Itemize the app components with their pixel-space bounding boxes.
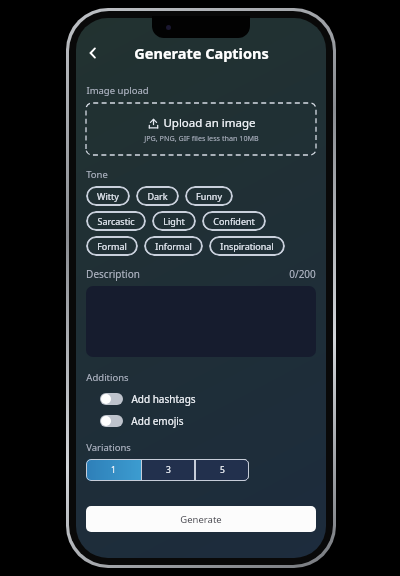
staticText: Upload an image — [163, 115, 256, 131]
button[interactable]: Formal — [86, 236, 138, 256]
button[interactable]: Sarcastic — [86, 211, 146, 231]
staticText: 5 — [220, 464, 225, 476]
button[interactable]: Dark — [136, 186, 179, 206]
button[interactable]: Informal — [144, 236, 203, 256]
button[interactable]: Funny — [185, 186, 233, 206]
staticText: Variations — [86, 441, 131, 454]
staticText: Witty — [97, 190, 119, 202]
staticText: Confident — [213, 215, 255, 227]
button[interactable]: 5 — [195, 459, 249, 481]
button[interactable]: Generate — [86, 506, 316, 532]
button[interactable]: Light — [152, 211, 196, 231]
button[interactable]: Witty — [86, 186, 130, 206]
staticText: JPG, PNG, GIF files less than 10MB — [144, 133, 259, 143]
button[interactable]: Add hashtags — [86, 390, 316, 408]
staticText: Dark — [147, 190, 168, 202]
staticText: Add emojis — [131, 414, 184, 428]
staticText: 3 — [166, 464, 171, 476]
button[interactable]: 1 — [86, 459, 141, 481]
staticText: Additions — [86, 371, 129, 384]
button[interactable]: Add emojis — [86, 412, 316, 430]
staticText: Light — [163, 215, 185, 227]
staticText: Add hashtags — [131, 392, 196, 406]
button[interactable]: 3 — [141, 459, 195, 481]
staticText: Tone — [86, 168, 108, 181]
button[interactable]: Upload an image — [86, 103, 316, 155]
staticText: Generate — [180, 513, 222, 526]
staticText: 0/200 — [289, 267, 316, 281]
staticText: Funny — [196, 190, 222, 202]
button[interactable]: Inspirational — [209, 236, 285, 256]
staticText: Inspirational — [220, 240, 274, 252]
staticText: Formal — [97, 240, 127, 252]
staticText: Informal — [155, 240, 192, 252]
button[interactable]: Back — [80, 40, 106, 66]
staticText: Image upload — [86, 84, 149, 97]
button[interactable]: Confident — [202, 211, 266, 231]
staticText: Description — [86, 267, 140, 281]
staticText: 1 — [111, 464, 116, 476]
staticText: Generate Captions — [134, 43, 269, 63]
staticText: Sarcastic — [97, 215, 135, 227]
